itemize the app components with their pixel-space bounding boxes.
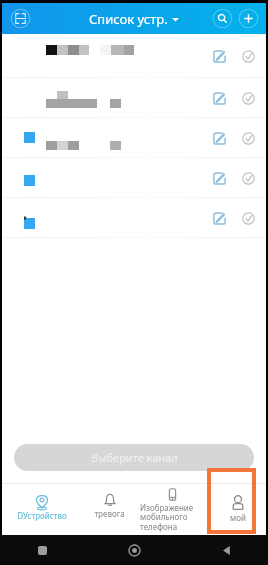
- button[interactable]: Edit device: [209, 168, 229, 188]
- button[interactable]: Add device: [238, 8, 259, 29]
- button[interactable]: Select device: [238, 168, 258, 188]
- button[interactable]: Edit device: [209, 88, 229, 108]
- button[interactable]: тревога: [82, 484, 137, 535]
- staticText: тревога: [94, 508, 125, 519]
- button[interactable]: Edit device: [2, 78, 266, 118]
- button[interactable]: Scan QR code: [10, 8, 31, 29]
- staticText: Выберите канал: [91, 450, 178, 465]
- button[interactable]: Select device: [238, 46, 258, 66]
- button[interactable]: Edit device: [2, 118, 266, 158]
- button[interactable]: DУстройство: [2, 484, 82, 535]
- button[interactable]: Back: [214, 538, 238, 562]
- button[interactable]: Recent apps: [30, 538, 54, 562]
- button[interactable]: Изображение мобильного телефона: [137, 484, 209, 535]
- staticText: Изображение мобильного телефона: [140, 502, 194, 533]
- button[interactable]: Edit device: [209, 208, 229, 228]
- button[interactable]: Select device: [238, 208, 258, 228]
- button[interactable]: Edit device: [2, 34, 266, 78]
- staticText: мой: [230, 512, 246, 523]
- button[interactable]: Edit device: [2, 158, 266, 198]
- button[interactable]: Search: [212, 8, 233, 29]
- button[interactable]: Список устр.: [89, 10, 179, 28]
- button[interactable]: Выберите канал: [14, 444, 254, 471]
- button[interactable]: Edit device: [209, 46, 229, 66]
- button[interactable]: мой: [209, 484, 266, 535]
- staticText: DУстройство: [17, 510, 67, 521]
- button[interactable]: Select device: [238, 88, 258, 108]
- button[interactable]: Edit device: [209, 128, 229, 148]
- button[interactable]: Edit device: [2, 198, 266, 238]
- button[interactable]: Home: [122, 538, 146, 562]
- button[interactable]: Select device: [238, 128, 258, 148]
- staticText: Список устр.: [89, 10, 168, 28]
